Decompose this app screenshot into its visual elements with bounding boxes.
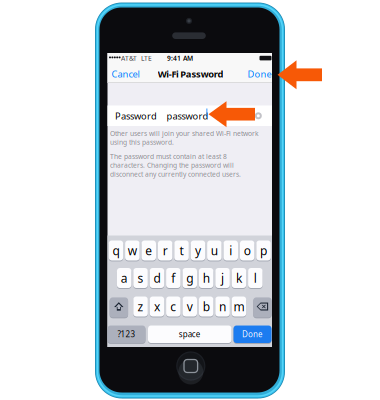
staticText: q	[112, 242, 119, 258]
staticText: ?123	[117, 329, 135, 339]
button[interactable]: c	[166, 296, 181, 317]
button[interactable]: Delete	[253, 296, 272, 318]
staticText: AT&T LTE	[121, 54, 152, 63]
button[interactable]: h	[199, 267, 213, 289]
staticText: a	[121, 270, 128, 286]
staticText: g	[186, 270, 193, 286]
staticText: c	[170, 298, 176, 314]
staticText: p	[260, 242, 267, 258]
button[interactable]: l	[248, 267, 263, 289]
staticText: o	[244, 242, 251, 258]
staticText: e	[145, 242, 152, 258]
staticText: y	[195, 242, 201, 258]
staticText: r	[163, 242, 168, 258]
staticText: h	[203, 270, 210, 286]
button[interactable]: y	[191, 240, 205, 261]
button[interactable]: v	[182, 296, 197, 317]
button[interactable]: z	[133, 296, 148, 317]
staticText: x	[154, 298, 160, 314]
staticText: m	[233, 298, 244, 314]
button[interactable]: q	[109, 240, 123, 261]
staticText: z	[138, 298, 144, 314]
button[interactable]: i	[223, 240, 238, 261]
staticText: u	[211, 242, 218, 258]
button[interactable]: f	[166, 267, 181, 289]
button[interactable]: ?123	[107, 325, 145, 344]
button[interactable]: m	[232, 296, 246, 317]
staticText: 9:41 AM	[167, 54, 193, 63]
button[interactable]: o	[240, 240, 254, 261]
button[interactable]: j	[215, 267, 230, 289]
button[interactable]: Cancel	[111, 69, 151, 79]
button[interactable]: t	[174, 240, 189, 261]
button[interactable]: Clear text	[0, 0, 380, 400]
button[interactable]: g	[182, 267, 197, 289]
button[interactable]: p	[256, 240, 271, 261]
staticText: Cancel	[111, 68, 139, 80]
staticText: f	[171, 270, 175, 286]
staticText: t	[180, 242, 184, 258]
staticText: Done	[247, 68, 271, 80]
staticText: w	[128, 242, 137, 258]
staticText: Done	[242, 329, 263, 339]
button[interactable]: s	[133, 267, 148, 289]
staticText: s	[138, 270, 144, 286]
button[interactable]: d	[150, 267, 164, 289]
button[interactable]: Done	[240, 69, 271, 79]
button[interactable]: b	[199, 296, 213, 317]
staticText: n	[219, 298, 226, 314]
staticText: j	[221, 270, 224, 286]
button[interactable]: Done	[233, 325, 271, 344]
staticText: l	[254, 270, 257, 286]
button[interactable]: x	[150, 296, 164, 317]
button[interactable]: a	[117, 267, 131, 289]
staticText: d	[153, 270, 160, 286]
staticText: Other users will join your shared Wi-Fi …	[110, 129, 259, 147]
staticText: password	[166, 110, 208, 122]
button[interactable]: e	[141, 240, 156, 261]
button[interactable]: k	[232, 267, 246, 289]
button[interactable]: w	[125, 240, 140, 261]
staticText: i	[229, 242, 232, 258]
staticText: b	[203, 298, 210, 314]
button[interactable]: u	[207, 240, 222, 261]
button[interactable]: r	[158, 240, 172, 261]
staticText: k	[236, 270, 242, 286]
staticText: Wi-Fi Password	[158, 68, 223, 80]
staticText: space	[179, 329, 201, 339]
staticText: v	[187, 298, 193, 314]
staticText: The password must contain at least 8 cha…	[110, 152, 241, 179]
button[interactable]: space	[148, 325, 231, 344]
button[interactable]: Shift	[110, 296, 128, 318]
staticText: Password	[115, 110, 157, 122]
button[interactable]: n	[215, 296, 230, 317]
